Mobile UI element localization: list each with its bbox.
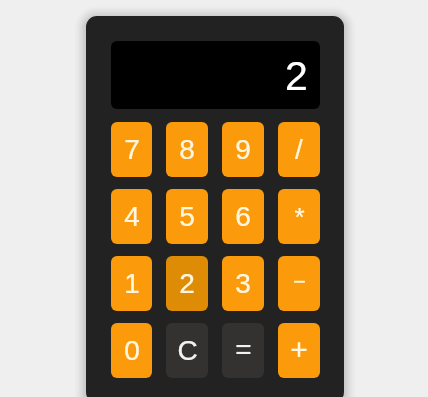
staticText: 2 <box>179 268 195 299</box>
staticText: 4 <box>124 201 140 232</box>
staticText: 8 <box>179 134 195 165</box>
button[interactable]: Nine <box>222 122 264 177</box>
staticText: 9 <box>235 134 251 165</box>
staticText: 6 <box>235 201 251 232</box>
button[interactable]: Plus <box>278 323 320 378</box>
button[interactable]: Three <box>222 256 264 311</box>
staticText: C <box>177 335 198 366</box>
button[interactable]: One <box>111 256 152 311</box>
button[interactable]: Eight <box>166 122 208 177</box>
staticText: 1 <box>124 268 140 299</box>
staticText: 5 <box>179 201 195 232</box>
button[interactable]: Minus <box>278 256 320 311</box>
staticText: * <box>294 202 305 231</box>
staticText: 2 <box>285 53 308 99</box>
staticText: + <box>290 333 308 367</box>
staticText: 7 <box>124 134 140 165</box>
button[interactable]: Two <box>166 256 208 311</box>
button[interactable]: Five <box>166 189 208 244</box>
staticText: − <box>293 269 306 294</box>
staticText: 3 <box>235 268 251 299</box>
button[interactable]: Four <box>111 189 152 244</box>
button[interactable]: Display showing 2 <box>111 41 320 109</box>
button[interactable]: Clear <box>166 323 208 378</box>
button[interactable]: Seven <box>111 122 152 177</box>
button[interactable]: Multiply <box>278 189 320 244</box>
button[interactable]: Divide <box>278 122 320 177</box>
staticText: 0 <box>124 335 140 366</box>
staticText: / <box>295 134 303 165</box>
button[interactable]: Equals <box>222 323 264 378</box>
button[interactable]: Six <box>222 189 264 244</box>
staticText: = <box>235 334 252 365</box>
button[interactable]: Zero <box>111 323 152 378</box>
